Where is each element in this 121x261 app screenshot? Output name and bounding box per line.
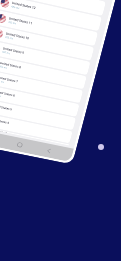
button[interactable]: United States 9	[0, 40, 91, 75]
staticText: 420 ms	[5, 35, 14, 40]
staticText: 486 ms	[11, 5, 20, 10]
button[interactable]: United States 12	[0, 0, 102, 31]
button[interactable]: United States 14	[3, 0, 110, 1]
button[interactable]: United States 10	[0, 25, 94, 61]
staticText: 354 ms	[0, 65, 8, 70]
staticText: 453 ms	[8, 20, 17, 25]
button[interactable]: United States 13	[0, 0, 106, 16]
staticText: 288 ms	[0, 93, 2, 98]
staticText: United States 10	[5, 31, 29, 40]
staticText: United States 6	[0, 89, 15, 97]
button[interactable]: Back	[42, 144, 56, 157]
staticText: 387 ms	[2, 50, 11, 55]
staticText: 321 ms	[0, 79, 5, 84]
button[interactable]: Home	[13, 138, 27, 151]
button[interactable]: United States 5	[0, 98, 76, 130]
button[interactable]: United States 6	[0, 84, 80, 117]
staticText: United States 4	[0, 117, 10, 125]
staticText: United States 12	[12, 1, 36, 10]
button[interactable]: United States 11	[0, 10, 98, 46]
button[interactable]: United States 3	[0, 125, 69, 146]
button[interactable]: United States 7	[0, 69, 83, 103]
button[interactable]: United States 4	[0, 111, 73, 143]
staticText: United States 3	[0, 127, 7, 133]
staticText: United States 8	[0, 61, 21, 69]
staticText: United States 5	[0, 103, 12, 111]
staticText: United States 9	[2, 46, 25, 55]
staticText: United States 11	[8, 16, 33, 25]
button[interactable]: United States 8	[0, 55, 87, 89]
staticText: United States 7	[0, 75, 18, 83]
